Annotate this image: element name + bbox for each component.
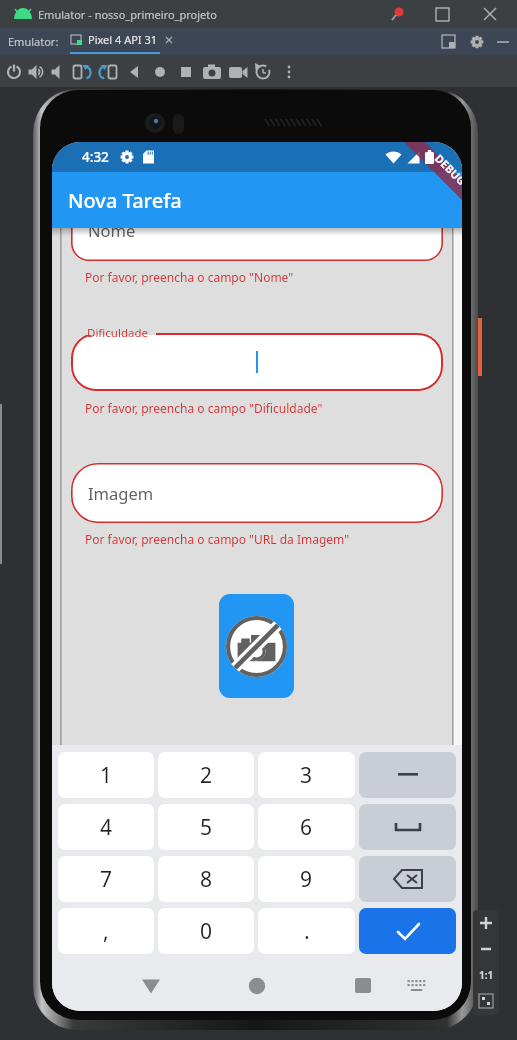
button[interactable]: Power <box>4 62 24 82</box>
button[interactable]: 4 <box>58 804 154 850</box>
button[interactable]: Space <box>359 804 456 850</box>
button[interactable]: Settings <box>468 33 486 51</box>
staticText: 3 <box>300 761 313 790</box>
button[interactable]: Image preview <box>219 594 294 698</box>
button[interactable]: , <box>58 908 154 954</box>
staticText: . <box>304 917 310 946</box>
button[interactable]: Minimize <box>494 33 512 51</box>
button[interactable]: Record <box>227 61 249 83</box>
button[interactable]: 6 <box>258 804 355 850</box>
button[interactable]: 3 <box>258 752 355 798</box>
staticText: Nome <box>88 219 136 241</box>
staticText: 0 <box>200 917 213 946</box>
staticText: DEBUG <box>433 151 462 187</box>
staticText: 7 <box>100 865 113 894</box>
button[interactable]: Zoom out <box>473 936 499 962</box>
button[interactable]: 0 <box>158 908 254 954</box>
button[interactable]: 9 <box>258 856 355 902</box>
button[interactable]: Hide keyboard <box>130 965 172 1007</box>
staticText: 4:32 <box>82 148 109 166</box>
staticText: Pixel 4 API 31 <box>88 32 158 47</box>
staticText: Emulator - nosso_primeiro_projeto <box>38 7 217 22</box>
button[interactable]: 7 <box>58 856 154 902</box>
button[interactable]: Zoom in <box>473 910 499 936</box>
button[interactable]: 2 <box>158 752 254 798</box>
button[interactable]: Close <box>480 4 500 24</box>
button[interactable]: Maximize <box>432 4 452 24</box>
button[interactable]: History <box>253 62 273 82</box>
button[interactable]: Backspace <box>359 856 456 902</box>
staticText: Emulator: <box>8 34 59 49</box>
button[interactable]: 5 <box>158 804 254 850</box>
button[interactable]: Home <box>236 965 278 1007</box>
button[interactable]: 1 <box>58 752 154 798</box>
staticText: 4 <box>100 813 113 842</box>
button[interactable]: Volume up <box>26 62 46 82</box>
staticText: 1:1 <box>479 968 494 982</box>
staticText: 8 <box>200 865 213 894</box>
staticText: Nova Tarefa <box>68 187 182 214</box>
button[interactable]: . <box>258 908 355 954</box>
button[interactable]: Rotate right <box>98 62 118 82</box>
staticText: Por favor, preencha o campo "URL da Imag… <box>85 531 350 547</box>
button[interactable]: Pixel 4 API 31 <box>70 32 174 47</box>
button[interactable]: Volume down <box>49 62 69 82</box>
staticText: Por favor, preencha o campo "Nome" <box>85 269 294 285</box>
button[interactable]: Fit to screen <box>473 988 499 1014</box>
staticText: Por favor, preencha o campo "Dificuldade… <box>85 400 323 416</box>
button[interactable]: Back <box>124 62 144 82</box>
button[interactable]: Split <box>440 33 458 51</box>
button[interactable]: Rotate left <box>72 62 92 82</box>
staticText: Imagem <box>88 482 154 504</box>
button[interactable]: Home <box>150 62 170 82</box>
staticText: 6 <box>300 813 313 842</box>
staticText: 9 <box>300 865 313 894</box>
button[interactable]: Enter <box>359 908 456 954</box>
staticText: , <box>103 917 109 946</box>
button[interactable]: Overview <box>176 62 196 82</box>
button[interactable]: 1:1 <box>473 962 499 988</box>
staticText: Dificuldade <box>87 325 148 341</box>
button[interactable]: Overview <box>342 965 384 1007</box>
staticText: 1 <box>100 761 113 790</box>
button[interactable]: Screenshot <box>201 61 223 83</box>
button[interactable]: Minus <box>359 752 456 798</box>
staticText: 2 <box>200 761 213 790</box>
button[interactable]: 8 <box>158 856 254 902</box>
staticText: 5 <box>200 813 213 842</box>
button[interactable]: Switch keyboard <box>395 965 437 1007</box>
button[interactable]: More <box>279 62 299 82</box>
